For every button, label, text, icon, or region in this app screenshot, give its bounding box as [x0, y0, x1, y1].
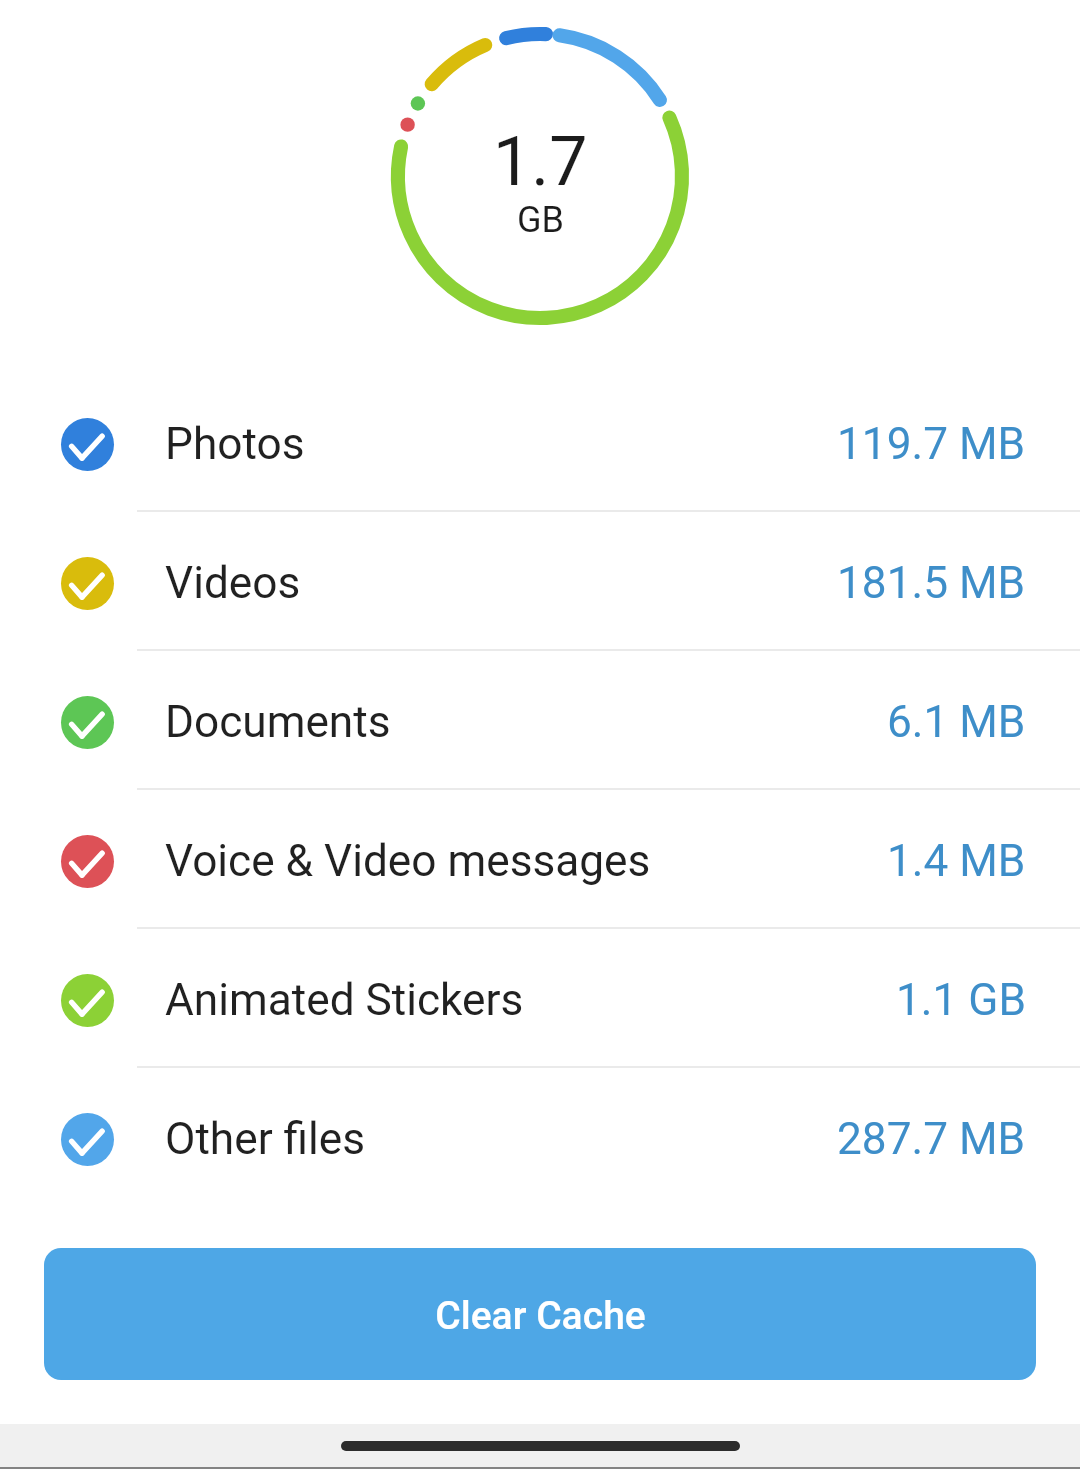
staticText: Documents [165, 696, 391, 748]
button[interactable]: Videos [0, 510, 1080, 649]
staticText: GB [517, 199, 564, 241]
staticText: Videos [165, 557, 301, 609]
staticText: 119.7 MB [837, 418, 1026, 470]
staticText: 1.1 GB [896, 974, 1026, 1026]
staticText: 181.5 MB [837, 557, 1026, 609]
button[interactable]: Documents [0, 649, 1080, 788]
staticText: 1.4 MB [887, 835, 1026, 887]
button[interactable]: Photos [0, 371, 1080, 510]
button[interactable]: Other files [0, 1066, 1080, 1205]
button[interactable]: Clear Cache [44, 1248, 1036, 1380]
button[interactable]: Animated Stickers [0, 927, 1080, 1066]
staticText: Voice & Video messages [165, 835, 651, 887]
staticText: 287.7 MB [837, 1113, 1026, 1165]
staticText: 6.1 MB [887, 696, 1026, 748]
staticText: Photos [165, 418, 305, 470]
staticText: Animated Stickers [165, 974, 524, 1026]
staticText: Other files [165, 1113, 366, 1165]
staticText: Clear Cache [435, 1293, 646, 1339]
other: Storage usage chart, 1.7 GB total [390, 26, 690, 326]
staticText: 1.7 [493, 122, 588, 202]
button[interactable]: Voice & Video messages [0, 788, 1080, 927]
